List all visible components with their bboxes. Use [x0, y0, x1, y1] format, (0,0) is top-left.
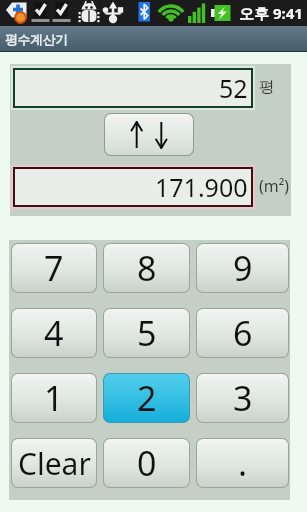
button[interactable]: Clear — [12, 439, 96, 487]
staticText: 171.900 — [155, 170, 248, 204]
staticText: 6 — [233, 310, 253, 356]
staticText: . — [238, 440, 248, 486]
staticText: 평 — [259, 77, 275, 97]
button[interactable]: 0 — [104, 439, 189, 487]
button[interactable]: 3 — [197, 374, 288, 422]
staticText: Clear — [18, 443, 91, 484]
button[interactable]: . — [197, 439, 288, 487]
button[interactable]: 4 — [12, 309, 96, 357]
button[interactable]: Swap units — [105, 114, 193, 155]
staticText: 3 — [233, 375, 253, 421]
staticText: 1 — [44, 375, 64, 421]
button[interactable]: 171.900 — [15, 169, 251, 205]
staticText: 7 — [44, 245, 64, 291]
button[interactable]: 5 — [104, 309, 189, 357]
staticText: 오후 9:41 — [239, 3, 303, 23]
button[interactable]: 52 — [15, 70, 251, 106]
button[interactable]: 6 — [197, 309, 288, 357]
button[interactable]: 1 — [12, 374, 96, 422]
staticText: 2 — [137, 375, 157, 421]
staticText: 0 — [137, 440, 157, 486]
button[interactable]: 7 — [12, 244, 96, 292]
staticText: 9 — [233, 245, 253, 291]
staticText: (m²) — [259, 175, 290, 197]
button[interactable]: 9 — [197, 244, 288, 292]
staticText: 52 — [219, 71, 248, 105]
staticText: 5 — [137, 310, 157, 356]
staticText: 평수계산기 — [5, 32, 68, 48]
button[interactable]: 8 — [104, 244, 189, 292]
button[interactable]: 2 — [104, 374, 189, 422]
staticText: 8 — [137, 245, 157, 291]
staticText: 4 — [44, 310, 64, 356]
